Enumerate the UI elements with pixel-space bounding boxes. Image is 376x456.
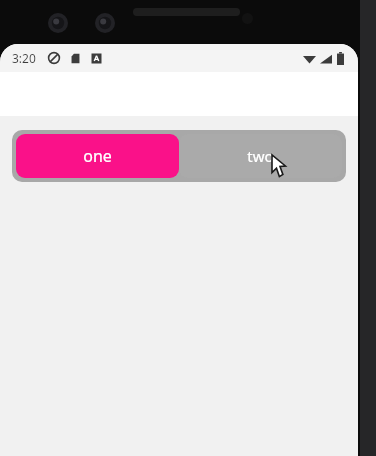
staticText: 3:20 — [12, 50, 36, 66]
button[interactable]: two — [179, 134, 342, 178]
other: Pointer — [272, 155, 288, 177]
staticText: one — [83, 145, 112, 167]
button[interactable]: one — [16, 134, 179, 178]
staticText: two — [247, 146, 274, 166]
